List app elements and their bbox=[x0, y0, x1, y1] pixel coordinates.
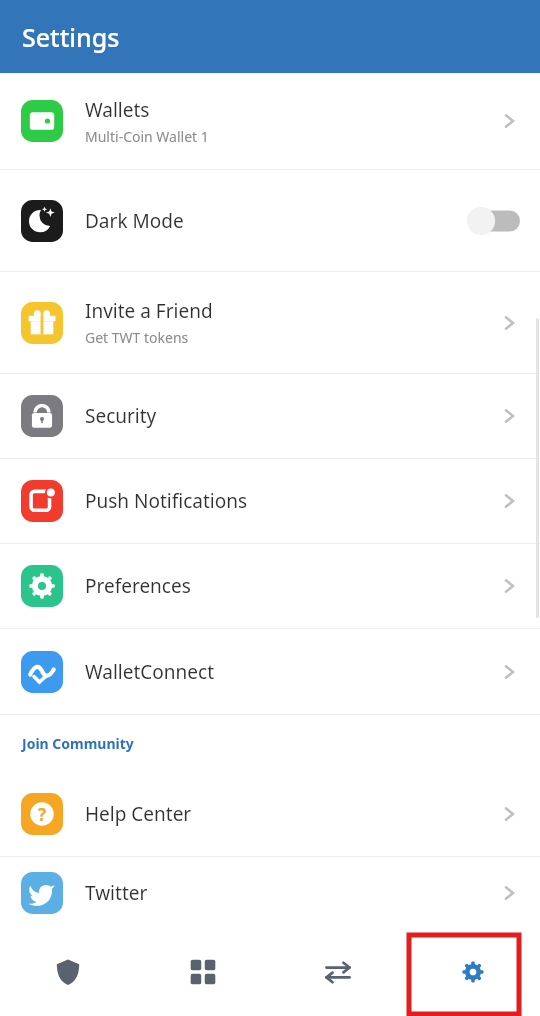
button[interactable]: Settings bbox=[405, 928, 540, 1016]
staticText: Settings bbox=[22, 20, 120, 54]
staticText: WalletConnect bbox=[85, 659, 215, 685]
staticText: Push Notifications bbox=[85, 488, 248, 514]
staticText: Preferences bbox=[85, 573, 191, 599]
button[interactable]: Security bbox=[0, 374, 540, 458]
button[interactable]: WalletConnect bbox=[0, 629, 540, 714]
staticText: Wallets bbox=[85, 97, 150, 123]
button[interactable]: Dark Mode bbox=[0, 170, 540, 271]
button[interactable]: Swap bbox=[270, 928, 405, 1016]
button[interactable]: Wallet bbox=[0, 928, 135, 1016]
staticText: Twitter bbox=[85, 880, 148, 906]
staticText: Get TWT tokens bbox=[85, 328, 189, 347]
button[interactable]: Preferences bbox=[0, 544, 540, 628]
staticText: Multi-Coin Wallet 1 bbox=[85, 127, 209, 146]
staticText: Dark Mode bbox=[85, 208, 184, 234]
button[interactable]: Invite a Friend bbox=[0, 272, 540, 373]
button[interactable]: Browser bbox=[135, 928, 270, 1016]
staticText: Join Community bbox=[22, 734, 134, 753]
staticText: Help Center bbox=[85, 801, 192, 827]
staticText: ? bbox=[38, 803, 47, 826]
button[interactable]: Twitter bbox=[0, 857, 540, 928]
staticText: Invite a Friend bbox=[85, 298, 213, 324]
button[interactable]: ? bbox=[0, 772, 540, 856]
staticText: Security bbox=[85, 403, 157, 429]
button[interactable]: Wallets bbox=[0, 73, 540, 169]
button[interactable]: Push Notifications bbox=[0, 459, 540, 543]
